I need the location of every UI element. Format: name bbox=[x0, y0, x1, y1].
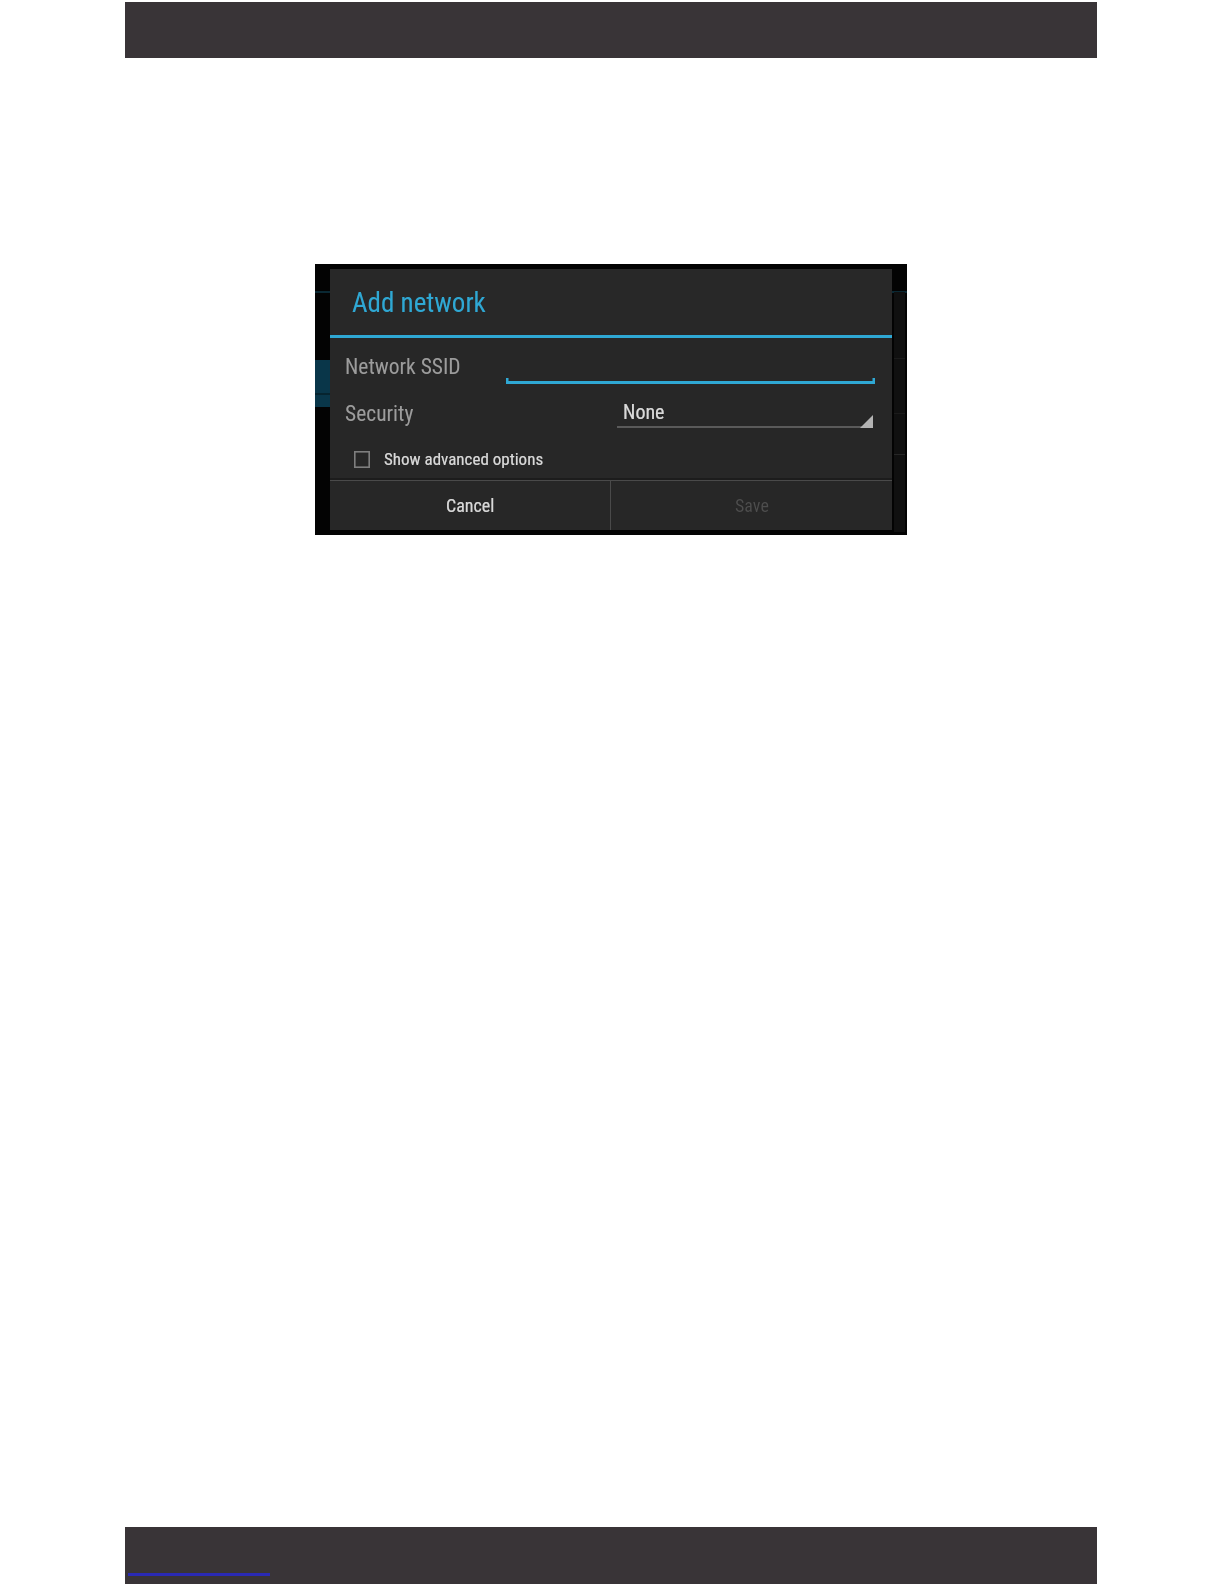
button[interactable]: Cancel bbox=[330, 481, 610, 530]
staticText: None bbox=[623, 400, 665, 423]
staticText: Security bbox=[345, 401, 414, 426]
staticText: Save bbox=[735, 495, 769, 516]
staticText: Add network bbox=[352, 287, 486, 319]
button[interactable]: Save bbox=[611, 481, 892, 530]
button[interactable]: Network SSID text field bbox=[506, 349, 875, 384]
staticText: Network SSID bbox=[345, 354, 461, 379]
staticText: Show advanced options bbox=[384, 449, 544, 469]
staticText: Cancel bbox=[446, 495, 495, 516]
button[interactable]: None bbox=[617, 393, 873, 429]
button[interactable]: Show advanced options bbox=[348, 443, 596, 473]
